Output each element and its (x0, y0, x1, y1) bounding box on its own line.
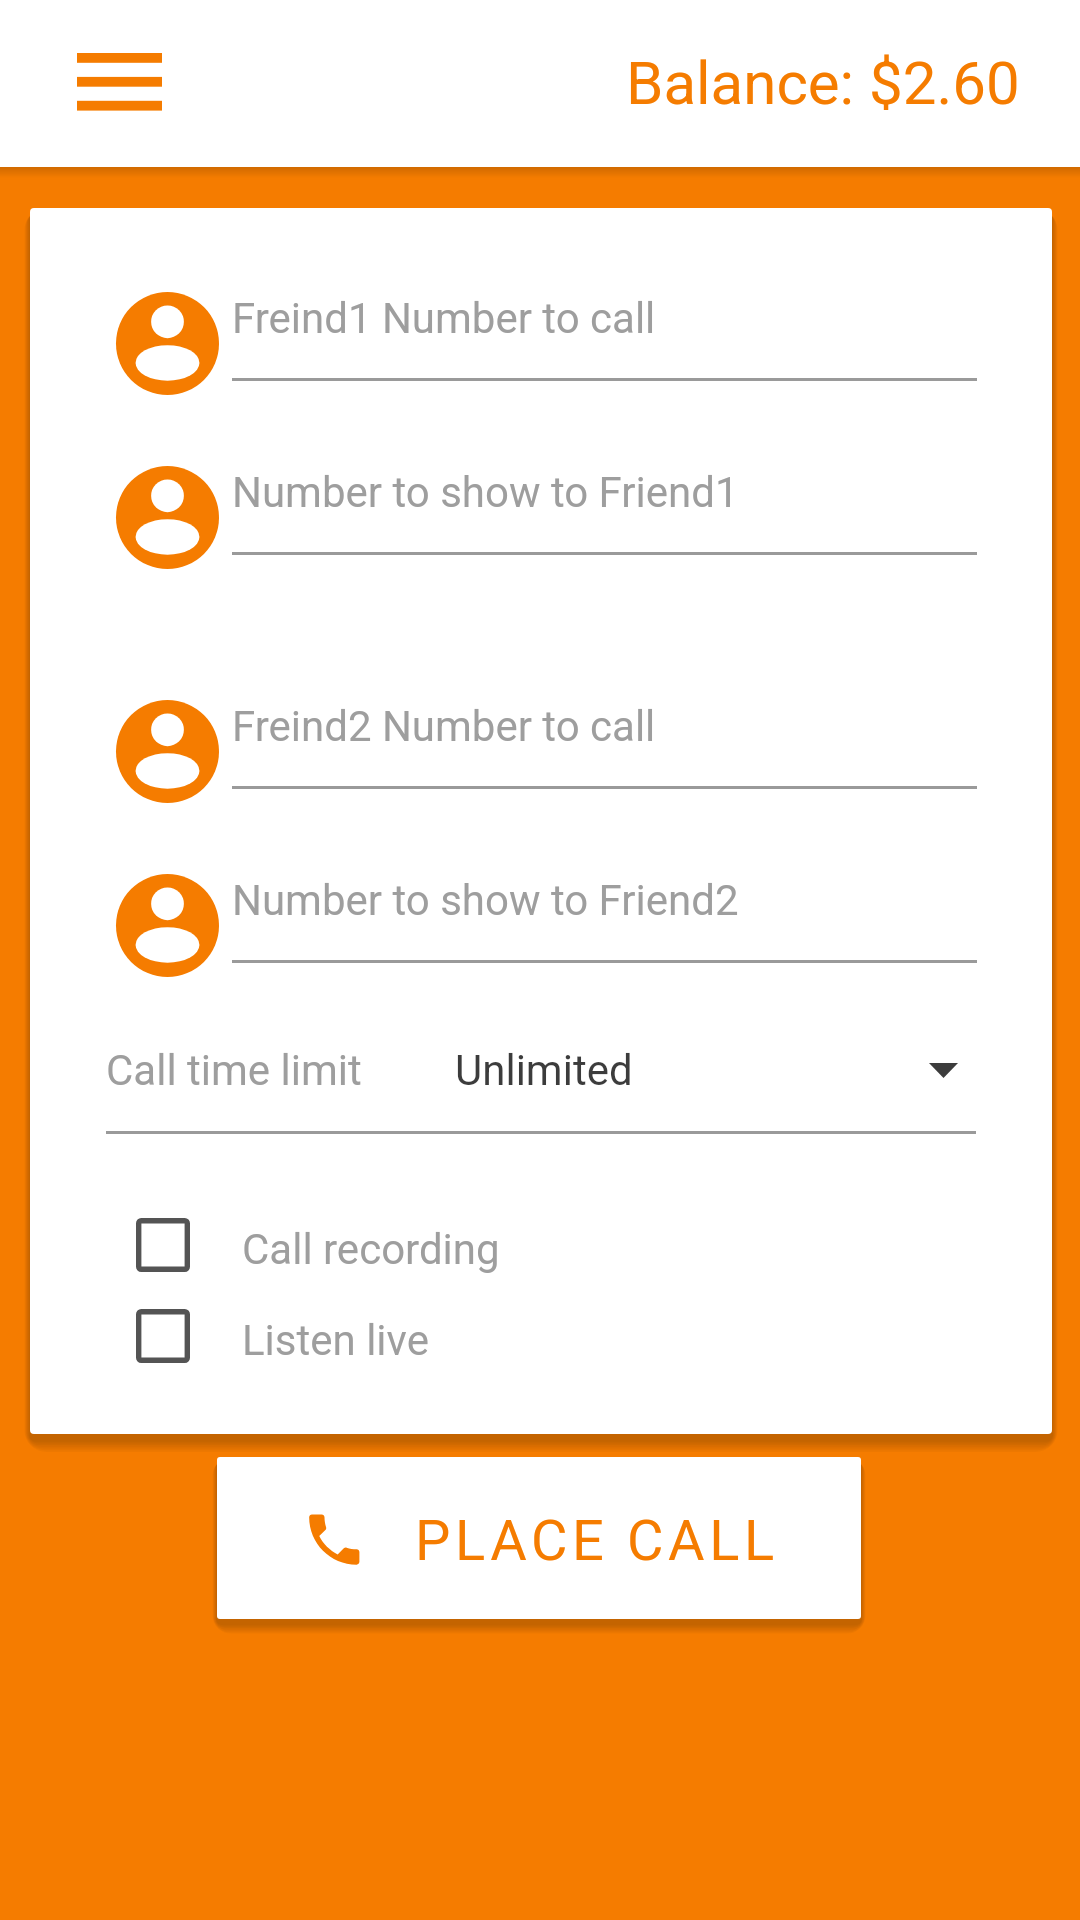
button[interactable]: PLACE CALL (217, 1457, 861, 1619)
staticText: Balance: $2.60 (626, 48, 1020, 118)
button[interactable]: Freind1 Number to call (116, 284, 1007, 392)
staticText: Freind2 Number to call (232, 702, 656, 751)
staticText: Listen live (242, 1316, 429, 1365)
button[interactable]: Call recording (126, 1204, 646, 1286)
staticText: Freind1 Number to call (232, 294, 656, 343)
staticText: Call time limit (106, 1046, 362, 1095)
staticText: Number to show to Friend1 (232, 468, 739, 517)
button[interactable]: Call time limit (90, 1028, 992, 1140)
staticText: Call recording (242, 1225, 500, 1274)
button[interactable]: Freind2 Number to call (116, 692, 1007, 800)
button[interactable]: Listen live (126, 1295, 646, 1377)
staticText: Unlimited (455, 1046, 633, 1095)
button[interactable]: Number to show to Friend2 (116, 866, 1007, 974)
staticText: Number to show to Friend2 (232, 876, 739, 925)
button[interactable]: Open navigation menu (42, 35, 198, 133)
button[interactable]: Balance: $2.60 (620, 24, 1080, 144)
button[interactable]: Number to show to Friend1 (116, 458, 1007, 566)
staticText: PLACE CALL (415, 1508, 779, 1574)
